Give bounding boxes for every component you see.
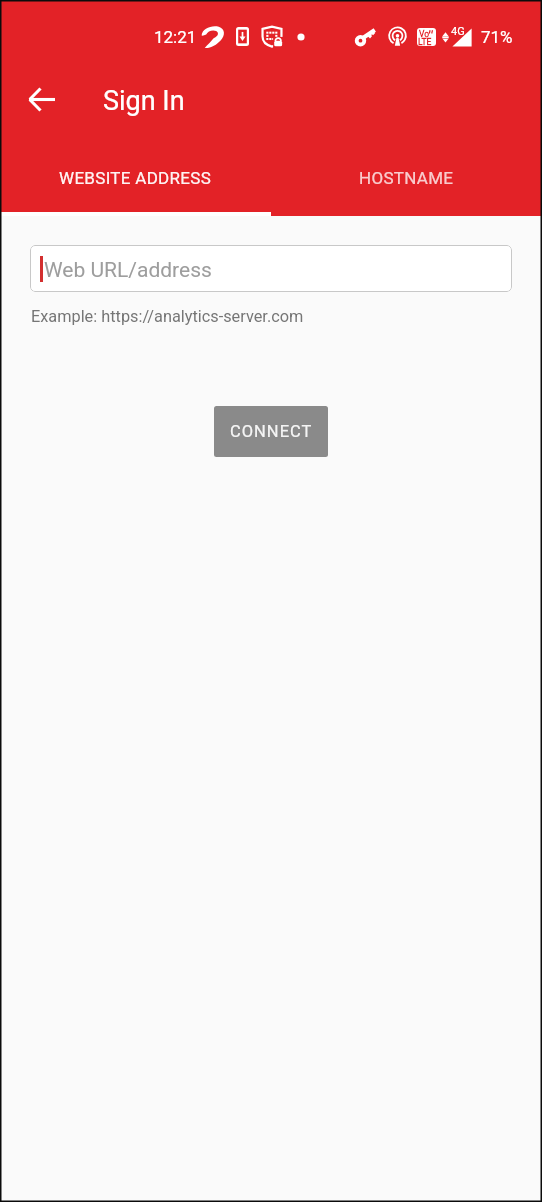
staticText: Vo xyxy=(419,29,430,39)
staticText: HOSTNAME xyxy=(359,168,454,188)
staticText: LTE xyxy=(418,37,432,46)
button[interactable]: Back xyxy=(19,76,65,122)
button[interactable]: CONNECT xyxy=(214,406,328,457)
staticText: 12:21 xyxy=(154,27,197,47)
staticText: 4G xyxy=(451,25,465,38)
staticText: WEBSITE ADDRESS xyxy=(59,168,212,188)
staticText: Example: https://analytics-server.com xyxy=(31,307,304,326)
staticText: Web URL/address xyxy=(44,258,212,283)
staticText: 71% xyxy=(481,27,513,47)
staticText: CONNECT xyxy=(230,422,313,441)
button[interactable]: WEBSITE ADDRESS xyxy=(0,152,271,213)
button[interactable]: Web URL/address xyxy=(30,245,512,292)
staticText: Sign In xyxy=(103,85,185,117)
button[interactable]: HOSTNAME xyxy=(271,152,542,213)
